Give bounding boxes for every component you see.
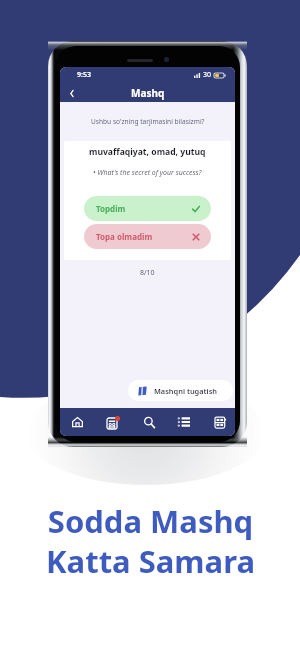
button[interactable]: Topa olmadim [84, 224, 211, 249]
staticText: • What's the secret of your success? [93, 168, 202, 178]
staticText: Mashqni tugatish [154, 386, 218, 396]
button[interactable]: Search [135, 408, 163, 436]
staticText: Mashq [131, 86, 165, 100]
button[interactable]: Back [63, 85, 80, 102]
button[interactable]: Mashqni tugatish [128, 380, 233, 401]
staticText: 30 [203, 70, 212, 80]
staticText: Sodda Mashq Katta Samara [46, 500, 255, 582]
button[interactable]: Lists [170, 408, 198, 436]
button[interactable]: Practice [99, 408, 127, 436]
button[interactable]: Topdim [84, 196, 211, 221]
staticText: 9:53 [77, 70, 91, 80]
staticText: Topdim [96, 203, 126, 214]
button[interactable]: Home [63, 408, 91, 436]
staticText: Ushbu so'zning tarjimasini bilasizmi? [91, 117, 205, 126]
button[interactable]: Cards [206, 408, 234, 436]
staticText: muvaffaqiyat, omad, yutuq [89, 146, 206, 158]
staticText: Topa olmadim [96, 231, 153, 242]
staticText: 8/10 [140, 268, 155, 278]
